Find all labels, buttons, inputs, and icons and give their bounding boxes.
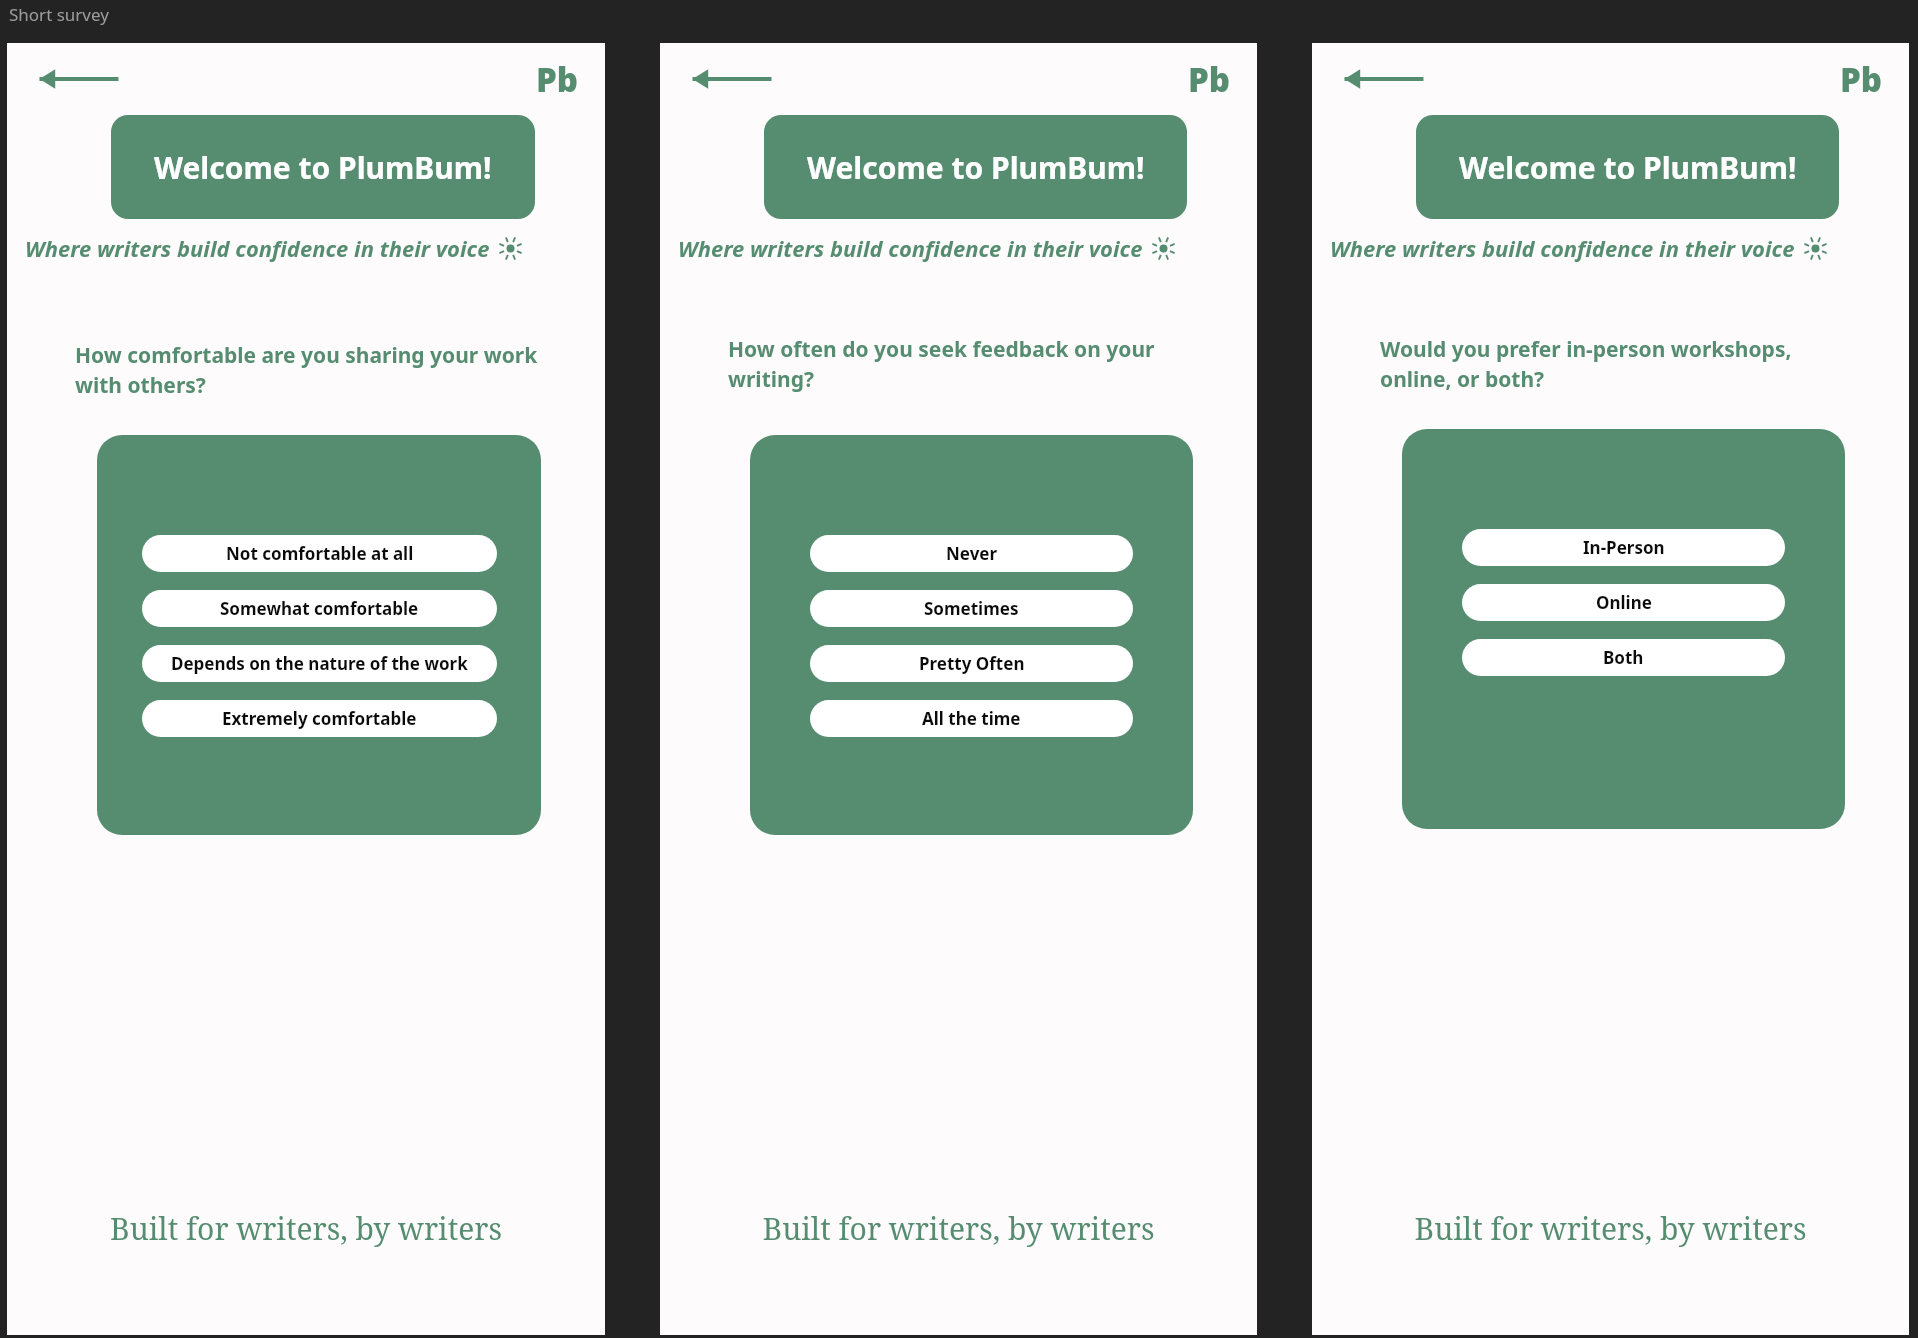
button[interactable]: Back xyxy=(1342,59,1426,99)
staticText: Would you prefer in-person workshops, on… xyxy=(1380,335,1859,393)
staticText: In-Person xyxy=(1583,536,1665,559)
staticText: Built for writers, by writers xyxy=(660,1208,1257,1249)
staticText: Welcome to PlumBum! xyxy=(807,147,1145,188)
staticText: Welcome to PlumBum! xyxy=(154,147,492,188)
button[interactable]: In-Person xyxy=(1462,529,1785,566)
button[interactable]: Back xyxy=(37,59,121,99)
staticText: Online xyxy=(1596,591,1652,614)
staticText: How often do you seek feedback on your w… xyxy=(728,335,1207,393)
staticText: Not comfortable at all xyxy=(226,542,414,565)
staticText: Welcome to PlumBum! xyxy=(1459,147,1797,188)
staticText: Both xyxy=(1603,646,1644,669)
staticText: All the time xyxy=(922,707,1021,730)
staticText: Pb xyxy=(1188,57,1231,102)
button[interactable]: Extremely comfortable xyxy=(142,700,497,737)
staticText: How comfortable are you sharing your wor… xyxy=(75,341,555,399)
button[interactable]: Both xyxy=(1462,639,1785,676)
staticText: Built for writers, by writers xyxy=(7,1208,605,1249)
staticText: Short survey xyxy=(9,3,109,26)
staticText: Pretty Often xyxy=(919,652,1025,675)
staticText: Built for writers, by writers xyxy=(1312,1208,1909,1249)
button[interactable]: Never xyxy=(810,535,1133,572)
button[interactable]: Pretty Often xyxy=(810,645,1133,682)
button[interactable]: Welcome to PlumBum! xyxy=(111,115,535,219)
staticText: Somewhat comfortable xyxy=(220,597,419,620)
staticText: Where writers build confidence in their … xyxy=(1330,233,1795,263)
staticText: Never xyxy=(946,542,998,565)
button[interactable]: Welcome to PlumBum! xyxy=(764,115,1187,219)
button[interactable]: Welcome to PlumBum! xyxy=(1416,115,1839,219)
button[interactable]: Somewhat comfortable xyxy=(142,590,497,627)
button[interactable]: Depends on the nature of the work xyxy=(142,645,497,682)
staticText: Extremely comfortable xyxy=(222,707,417,730)
button[interactable]: Back xyxy=(690,59,774,99)
button[interactable]: Online xyxy=(1462,584,1785,621)
staticText: Where writers build confidence in their … xyxy=(25,233,490,263)
staticText: Depends on the nature of the work xyxy=(171,652,468,675)
staticText: Where writers build confidence in their … xyxy=(678,233,1143,263)
staticText: Pb xyxy=(536,57,579,102)
button[interactable]: Sometimes xyxy=(810,590,1133,627)
button[interactable]: All the time xyxy=(810,700,1133,737)
button[interactable]: Not comfortable at all xyxy=(142,535,497,572)
staticText: Sometimes xyxy=(924,597,1019,620)
staticText: Pb xyxy=(1840,57,1883,102)
